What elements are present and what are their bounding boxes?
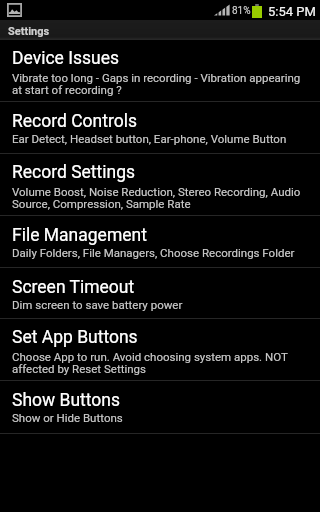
- staticText: File Management: [12, 225, 147, 246]
- button[interactable]: Set App Buttons: [0, 319, 320, 381]
- button[interactable]: Record Controls: [0, 102, 320, 154]
- staticText: 81%: [232, 5, 251, 17]
- staticText: Show Buttons: [12, 390, 121, 411]
- button[interactable]: Show Buttons: [0, 381, 320, 434]
- staticText: Set App Buttons: [12, 327, 138, 348]
- staticText: Show or Hide Buttons: [12, 411, 123, 424]
- staticText: Record Controls: [12, 111, 137, 132]
- staticText: Choose App to run. Avoid choosing system…: [12, 350, 310, 376]
- button[interactable]: File Management: [0, 216, 320, 268]
- other: Screenshot captured: [7, 3, 22, 17]
- staticText: Device Issues: [12, 48, 119, 69]
- staticText: Daily Folders, File Managers, Choose Rec…: [12, 246, 295, 259]
- staticText: Settings: [8, 25, 50, 38]
- button[interactable]: Record Settings: [0, 154, 320, 216]
- staticText: Dim screen to save battery power: [12, 298, 183, 311]
- staticText: Vibrate too long - Gaps in recording - V…: [12, 71, 310, 97]
- staticText: Ear Detect, Headset button, Ear-phone, V…: [12, 132, 287, 145]
- staticText: Volume Boost, Noise Reduction, Stereo Re…: [12, 185, 310, 211]
- staticText: Screen Timeout: [12, 277, 135, 298]
- button[interactable]: Device Issues: [0, 40, 320, 102]
- button[interactable]: Screen Timeout: [0, 268, 320, 319]
- staticText: 5:54 PM: [268, 4, 316, 19]
- staticText: Record Settings: [12, 162, 136, 183]
